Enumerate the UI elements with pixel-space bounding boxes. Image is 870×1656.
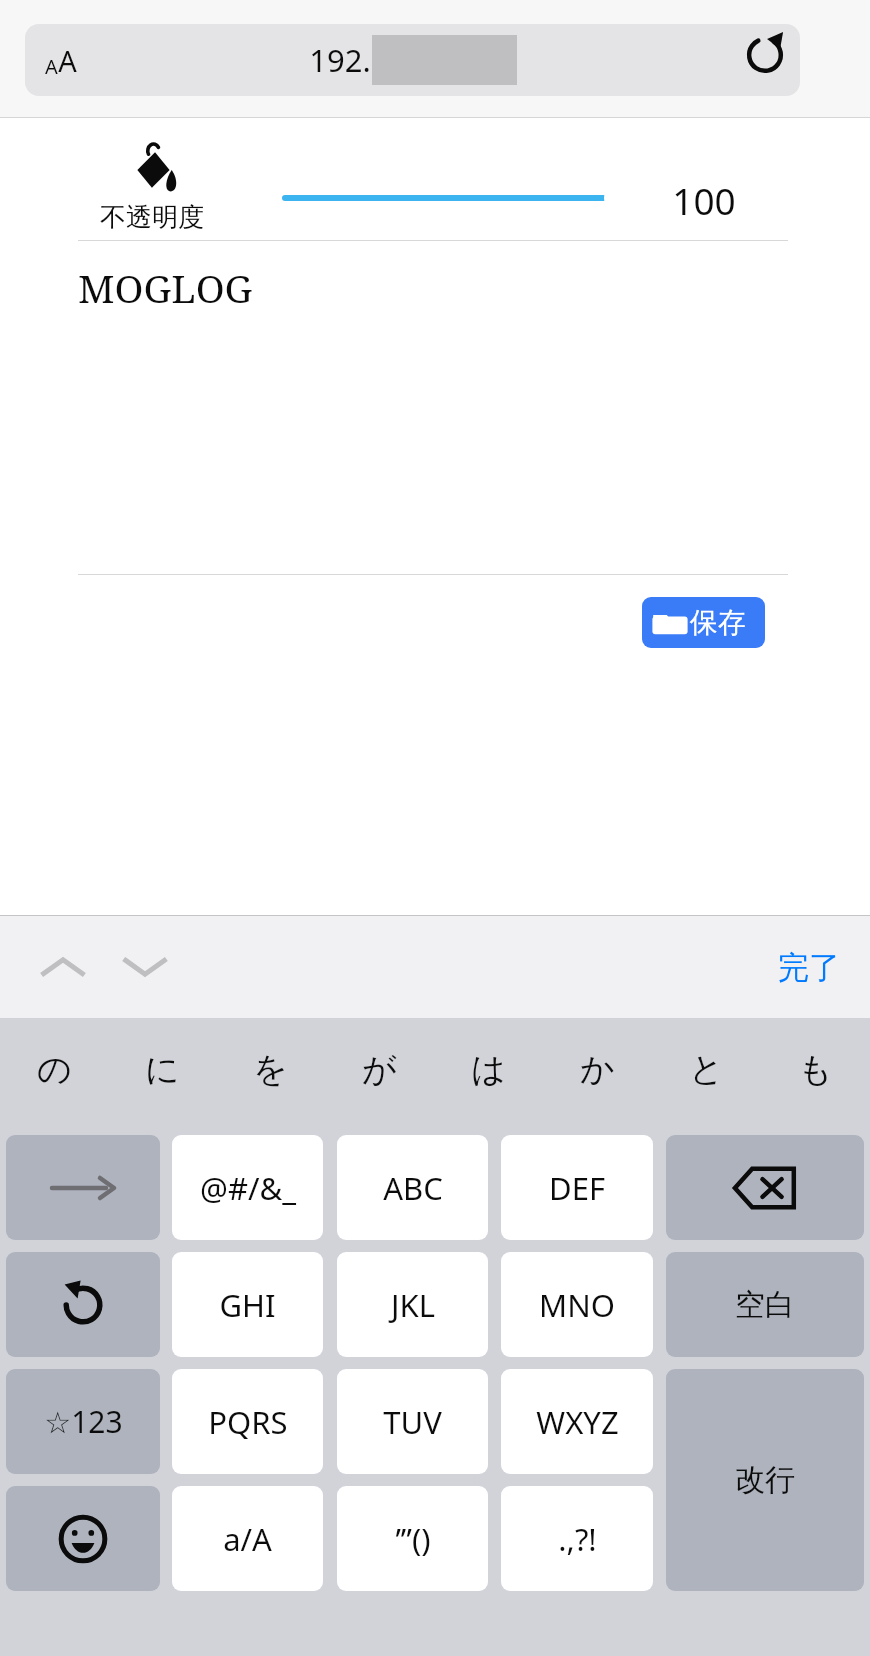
staticText: が	[362, 1048, 397, 1091]
staticText: JKL	[391, 1284, 435, 1326]
staticText: TUV	[383, 1401, 442, 1443]
staticText: ABC	[383, 1167, 443, 1209]
staticText: a/A	[223, 1518, 272, 1560]
staticText: MOGLOG	[78, 261, 253, 314]
staticText: MNO	[539, 1284, 615, 1326]
staticText: の	[37, 1048, 72, 1091]
staticText: 完了	[778, 948, 840, 987]
staticText: 保存	[690, 605, 746, 640]
button[interactable]: JKL	[337, 1252, 488, 1357]
staticText: @#/&_	[200, 1167, 296, 1209]
button[interactable]: Page settings	[25, 24, 800, 96]
button[interactable]: Page settings	[45, 41, 77, 80]
button[interactable]: の	[0, 1018, 108, 1120]
staticText: と	[689, 1048, 724, 1091]
staticText: 192.	[309, 39, 371, 81]
button[interactable]: 空白	[666, 1252, 864, 1357]
button[interactable]: GHI	[172, 1252, 323, 1357]
button[interactable]: Key	[6, 1135, 160, 1240]
button[interactable]: 改行	[666, 1369, 864, 1591]
button[interactable]: MNO	[501, 1252, 653, 1357]
button[interactable]: ABC	[337, 1135, 488, 1240]
staticText: .,?!	[558, 1518, 597, 1560]
button[interactable]: TUV	[337, 1369, 488, 1474]
button[interactable]: が	[325, 1018, 434, 1120]
staticText: GHI	[219, 1284, 276, 1326]
staticText: に	[145, 1048, 180, 1091]
button[interactable]: は	[434, 1018, 543, 1120]
staticText: DEF	[549, 1167, 605, 1209]
staticText: も	[798, 1048, 833, 1091]
button[interactable]: を	[216, 1018, 325, 1120]
button[interactable]: WXYZ	[501, 1369, 653, 1474]
staticText: 100	[672, 175, 736, 225]
button[interactable]: か	[543, 1018, 652, 1120]
staticText: A	[45, 53, 58, 80]
staticText: ’”()	[395, 1518, 431, 1560]
staticText: WXYZ	[536, 1401, 619, 1443]
button[interactable]: も	[761, 1018, 870, 1120]
staticText: 改行	[735, 1461, 795, 1499]
button[interactable]: 保存	[642, 597, 765, 648]
button[interactable]: Key	[6, 1252, 160, 1357]
button[interactable]: と	[652, 1018, 761, 1120]
button[interactable]: .,?!	[501, 1486, 653, 1591]
button[interactable]: a/A	[172, 1486, 323, 1591]
staticText: 不透明度	[100, 201, 204, 234]
staticText: ☆123	[44, 1401, 123, 1442]
staticText: PQRS	[208, 1401, 288, 1443]
button[interactable]: 完了	[778, 948, 840, 987]
staticText: か	[580, 1048, 615, 1091]
staticText: は	[471, 1048, 506, 1091]
button[interactable]: Reload	[735, 25, 795, 85]
button[interactable]: Next field	[112, 916, 178, 1018]
staticText: A	[58, 41, 77, 80]
staticText: を	[253, 1048, 288, 1091]
button[interactable]: Key	[666, 1135, 864, 1240]
button[interactable]: DEF	[501, 1135, 653, 1240]
button[interactable]: @#/&_	[172, 1135, 323, 1240]
button[interactable]: に	[108, 1018, 216, 1120]
button[interactable]: PQRS	[172, 1369, 323, 1474]
button[interactable]: Previous field	[30, 916, 96, 1018]
button[interactable]: ’”()	[337, 1486, 488, 1591]
button[interactable]: Key	[6, 1486, 160, 1591]
button[interactable]: ☆123	[6, 1369, 160, 1474]
staticText: 空白	[735, 1286, 795, 1324]
